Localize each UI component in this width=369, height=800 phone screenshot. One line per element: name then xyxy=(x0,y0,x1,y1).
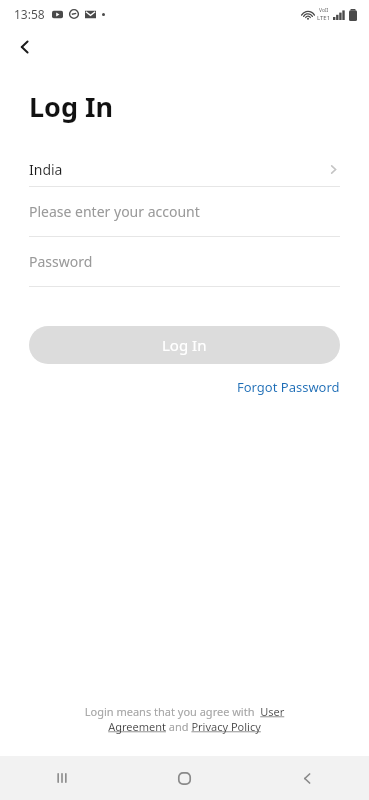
button[interactable]: India xyxy=(29,153,340,186)
staticText: Password xyxy=(29,252,93,271)
button[interactable]: Password xyxy=(29,237,340,286)
staticText: Please enter your account xyxy=(29,202,200,221)
staticText: Log In xyxy=(29,88,114,125)
button[interactable]: Forgot Password xyxy=(237,378,340,396)
button[interactable]: Log In xyxy=(29,326,340,364)
staticText: Forgot Password xyxy=(237,378,340,396)
staticText: VoII xyxy=(319,7,329,14)
button[interactable]: Recent apps xyxy=(0,756,123,800)
button[interactable]: Login means that you agree with User Agr… xyxy=(60,704,309,734)
staticText: LTE1 xyxy=(317,14,331,22)
staticText: India xyxy=(29,160,63,179)
staticText: 13:58 xyxy=(14,6,45,22)
button[interactable]: Back xyxy=(246,756,369,800)
button[interactable]: Home xyxy=(123,756,246,800)
button[interactable]: Back xyxy=(8,30,42,64)
staticText: Log In xyxy=(162,335,207,355)
staticText: Login means that you agree with User Agr… xyxy=(60,704,309,734)
button[interactable]: Please enter your account xyxy=(29,187,340,236)
